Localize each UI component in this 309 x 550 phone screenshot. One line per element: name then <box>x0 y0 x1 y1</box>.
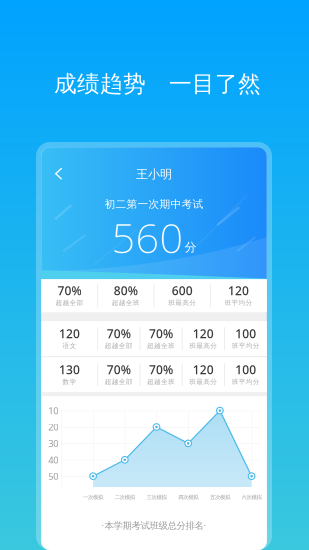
staticText: 班平均分 <box>232 342 260 350</box>
staticText: 初二第一次期中考试 <box>104 198 203 211</box>
staticText: 130 <box>59 362 80 378</box>
staticText: 四次模拟 <box>178 494 198 500</box>
staticText: 二次模拟 <box>115 494 135 500</box>
staticText: 数学 <box>62 378 76 386</box>
staticText: 120 <box>193 326 214 342</box>
staticText: 50 <box>48 470 58 482</box>
staticText: 班最高分 <box>168 299 196 307</box>
staticText: 超越全部 <box>55 299 83 307</box>
staticText: 成绩趋势 一目了然 <box>54 70 261 98</box>
staticText: 三次模拟 <box>146 494 166 500</box>
staticText: 70% <box>107 326 131 342</box>
staticText: 120 <box>193 362 214 378</box>
staticText: 语文 <box>62 342 76 350</box>
staticText: 超越全班 <box>147 378 175 386</box>
staticText: 40 <box>48 454 58 466</box>
staticText: 超越全部 <box>105 342 133 350</box>
staticText: 70% <box>57 283 81 299</box>
staticText: 王小明 <box>136 167 172 181</box>
staticText: 班最高分 <box>189 342 217 350</box>
staticText: 70% <box>149 362 173 378</box>
staticText: 560 <box>111 210 183 265</box>
staticText: 一次模拟 <box>83 494 103 500</box>
staticText: 六次模拟 <box>242 494 262 500</box>
staticText: ·本学期考试班级总分排名· <box>101 519 206 531</box>
staticText: 班最高分 <box>189 378 217 386</box>
staticText: 70% <box>149 326 173 342</box>
staticText: 10 <box>48 404 58 417</box>
staticText: 100 <box>235 326 256 342</box>
staticText: 超越全部 <box>105 378 133 386</box>
staticText: 五次模拟 <box>210 494 230 500</box>
staticText: 120 <box>228 283 249 299</box>
staticText: 30 <box>48 437 58 450</box>
staticText: 120 <box>59 326 80 342</box>
staticText: 70% <box>107 362 131 378</box>
button[interactable]: Back <box>46 161 72 187</box>
staticText: 分 <box>184 240 196 254</box>
staticText: 20 <box>48 421 58 433</box>
staticText: 100 <box>235 362 256 378</box>
staticText: 超越全班 <box>112 299 140 307</box>
staticText: 超越全班 <box>147 342 175 350</box>
staticText: 班平均分 <box>225 299 253 307</box>
staticText: 80% <box>114 283 138 299</box>
staticText: 班平均分 <box>232 378 260 386</box>
staticText: 600 <box>172 283 193 299</box>
